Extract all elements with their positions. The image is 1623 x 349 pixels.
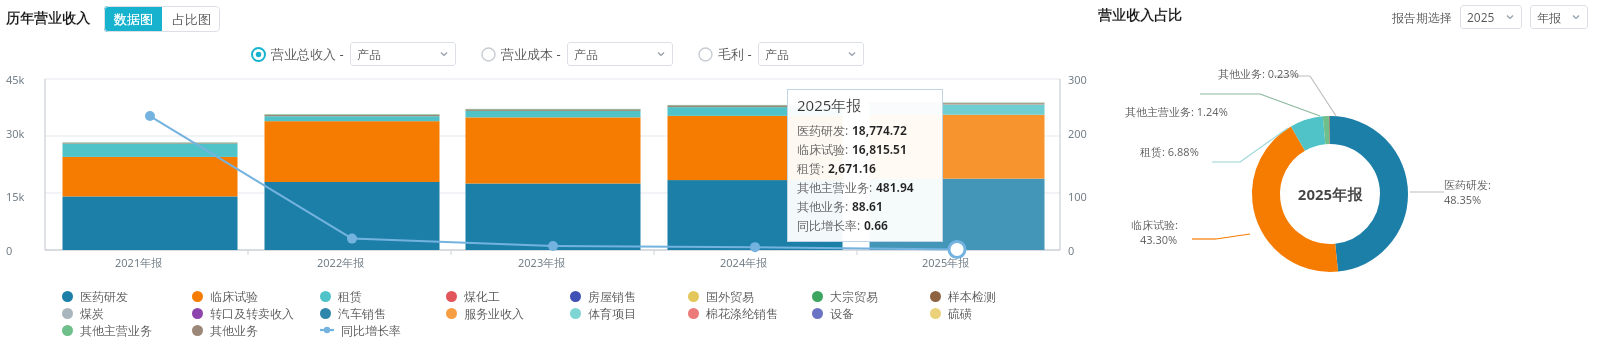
- staticText: 年报: [1537, 10, 1561, 25]
- staticText: 其他主营业务: 1.24%: [1125, 104, 1228, 119]
- staticText: 2024年报: [720, 255, 790, 270]
- staticText: 临床试验:: [797, 141, 852, 157]
- button[interactable]: 转口及转卖收入: [192, 302, 316, 324]
- button[interactable]: 营业总收入 -: [252, 42, 456, 66]
- staticText: 其他主营业务:: [797, 179, 876, 195]
- staticText: 48.35%: [1444, 192, 1482, 207]
- staticText: 其他业务:: [797, 198, 852, 214]
- staticText: 租赁: 6.88%: [1140, 144, 1199, 159]
- staticText: 100: [1068, 189, 1087, 204]
- staticText: 煤炭: [80, 306, 104, 321]
- button[interactable]: 营业成本 -: [482, 42, 673, 66]
- staticText: 43.30%: [1140, 232, 1178, 247]
- staticText: 毛利 -: [718, 45, 752, 63]
- button[interactable]: 其他业务: [192, 319, 316, 341]
- staticText: 2022年报: [317, 255, 387, 270]
- staticText: 房屋销售: [588, 289, 636, 304]
- button[interactable]: 毛利 -: [699, 42, 864, 66]
- staticText: 同比增长率: [341, 323, 401, 338]
- button[interactable]: 煤炭: [62, 302, 186, 324]
- staticText: 481.94: [876, 179, 914, 195]
- button[interactable]: 样本检测: [930, 285, 1054, 307]
- staticText: 医药研发:: [797, 122, 852, 138]
- staticText: 硫磺: [948, 306, 972, 321]
- staticText: 300: [1068, 72, 1087, 87]
- staticText: 营业成本 -: [501, 45, 561, 63]
- staticText: 0: [1068, 243, 1075, 258]
- staticText: 88.61: [852, 198, 883, 214]
- staticText: 租赁: [338, 289, 362, 304]
- staticText: 煤化工: [464, 289, 500, 304]
- button[interactable]: 产品: [350, 42, 456, 66]
- staticText: 医药研发: [80, 289, 128, 304]
- button[interactable]: 临床试验: [192, 285, 316, 307]
- staticText: 数据图: [114, 11, 153, 27]
- button[interactable]: 产品: [567, 42, 673, 66]
- staticText: 营业总收入 -: [271, 45, 344, 63]
- button[interactable]: 2025: [1460, 5, 1522, 29]
- button[interactable]: 体育项目: [570, 302, 694, 324]
- staticText: 历年营业收入: [6, 10, 90, 28]
- button[interactable]: 煤化工: [446, 285, 570, 307]
- staticText: 租赁:: [797, 160, 828, 176]
- staticText: 0.66: [864, 217, 888, 233]
- staticText: 临床试验:: [1131, 217, 1178, 232]
- staticText: 占比图: [172, 11, 211, 27]
- staticText: 45k: [6, 72, 39, 87]
- staticText: 报告期选择: [1392, 10, 1452, 25]
- staticText: 2021年报: [115, 255, 185, 270]
- staticText: 产品: [357, 47, 381, 62]
- staticText: 16,815.51: [852, 141, 907, 157]
- button[interactable]: 硫磺: [930, 302, 1054, 324]
- staticText: 棉花涤纶销售: [706, 306, 778, 321]
- button[interactable]: 设备: [812, 302, 936, 324]
- staticText: 服务业收入: [464, 306, 524, 321]
- staticText: 同比增长率:: [797, 217, 864, 233]
- staticText: 2025年报: [797, 95, 862, 115]
- staticText: 18,774.72: [852, 122, 907, 138]
- button[interactable]: 数据图: [104, 6, 162, 32]
- staticText: 0: [6, 243, 39, 258]
- staticText: 2023年报: [518, 255, 588, 270]
- staticText: 大宗贸易: [830, 289, 878, 304]
- staticText: 2,671.16: [828, 160, 876, 176]
- button[interactable]: 占比图: [162, 6, 220, 32]
- button[interactable]: 同比增长率: [320, 319, 444, 341]
- staticText: 30k: [6, 126, 39, 141]
- staticText: 其他业务: [210, 323, 258, 338]
- staticText: 营业收入占比: [1098, 7, 1182, 25]
- staticText: 医药研发:: [1444, 177, 1491, 192]
- button[interactable]: 国外贸易: [688, 285, 812, 307]
- staticText: 国外贸易: [706, 289, 754, 304]
- button[interactable]: 其他主营业务: [62, 319, 186, 341]
- staticText: 15k: [6, 189, 39, 204]
- staticText: 设备: [830, 306, 854, 321]
- staticText: 体育项目: [588, 306, 636, 321]
- staticText: 2025: [1467, 9, 1495, 25]
- button[interactable]: 服务业收入: [446, 302, 570, 324]
- staticText: 样本检测: [948, 289, 996, 304]
- staticText: 转口及转卖收入: [210, 306, 294, 321]
- button[interactable]: 租赁: [320, 285, 444, 307]
- button[interactable]: 产品: [758, 42, 864, 66]
- staticText: 200: [1068, 126, 1087, 141]
- button[interactable]: 年报: [1530, 5, 1588, 29]
- staticText: 汽车销售: [338, 306, 386, 321]
- staticText: 2025年报: [922, 255, 992, 270]
- staticText: 其他主营业务: [80, 323, 152, 338]
- button[interactable]: 大宗贸易: [812, 285, 936, 307]
- button[interactable]: 医药研发: [62, 285, 186, 307]
- button[interactable]: 棉花涤纶销售: [688, 302, 812, 324]
- staticText: 产品: [765, 47, 789, 62]
- staticText: 其他业务: 0.23%: [1218, 66, 1299, 81]
- button[interactable]: 房屋销售: [570, 285, 694, 307]
- staticText: 产品: [574, 47, 598, 62]
- staticText: 2025年报: [1283, 184, 1377, 204]
- staticText: 临床试验: [210, 289, 258, 304]
- button[interactable]: 汽车销售: [320, 302, 444, 324]
